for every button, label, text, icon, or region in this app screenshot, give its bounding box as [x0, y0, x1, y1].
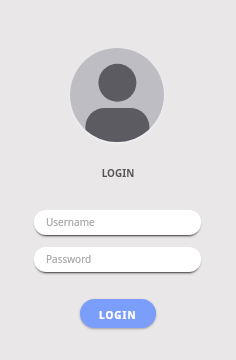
button[interactable]: Username [34, 210, 201, 235]
other: Profile avatar [70, 48, 164, 142]
button[interactable]: LOGIN [80, 299, 156, 328]
staticText: Password [46, 252, 92, 266]
staticText: LOGIN [0, 166, 236, 360]
staticText: LOGIN [99, 308, 137, 322]
button[interactable]: Password [34, 247, 201, 272]
staticText: Username [46, 215, 95, 229]
